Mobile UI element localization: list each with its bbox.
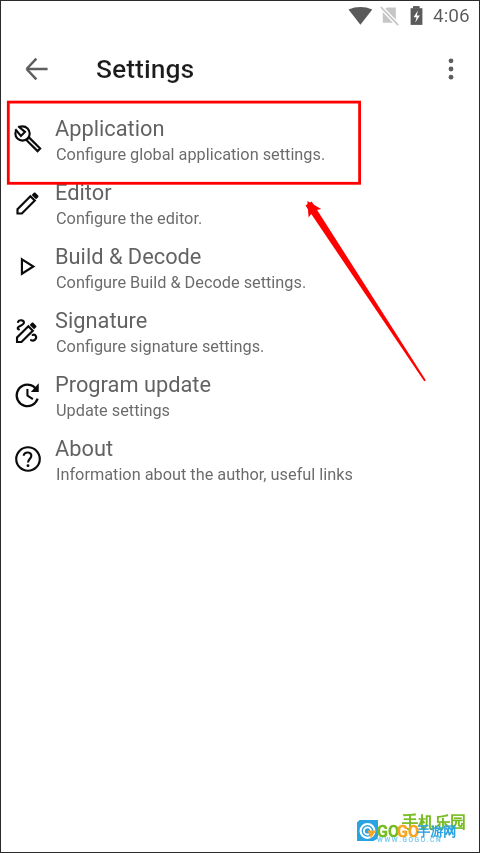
staticText: Build & Decode — [55, 244, 202, 270]
button[interactable]: Build & Decode — [0, 230, 480, 294]
staticText: About — [55, 436, 114, 462]
staticText: Configure the editor. — [56, 209, 203, 228]
staticText: 手机乐园 — [402, 813, 466, 833]
staticText: 4:06 — [433, 4, 470, 26]
staticText: Information about the author, useful lin… — [56, 465, 353, 484]
staticText: Signature — [55, 308, 148, 334]
button[interactable]: More options — [430, 48, 472, 90]
button[interactable]: Application — [0, 102, 480, 166]
staticText: Configure signature settings. — [56, 337, 265, 356]
staticText: Update settings — [56, 401, 171, 420]
staticText: Application — [55, 116, 165, 142]
staticText: Program update — [55, 372, 212, 398]
button[interactable]: Editor — [0, 166, 480, 230]
button[interactable]: Signature — [0, 294, 480, 358]
button[interactable]: Back — [13, 45, 61, 93]
button[interactable]: About — [0, 422, 480, 486]
staticText: Configure Build & Decode settings. — [56, 273, 307, 292]
staticText: Editor — [55, 180, 112, 206]
staticText: Configure global application settings. — [56, 145, 326, 164]
staticText: 手游网 — [417, 823, 456, 839]
button[interactable]: Program update — [0, 358, 480, 422]
staticText: GO — [397, 822, 419, 841]
staticText: GO — [377, 822, 399, 841]
staticText: Settings — [96, 53, 195, 84]
staticText: W W W . G O G O . C N — [377, 836, 441, 844]
